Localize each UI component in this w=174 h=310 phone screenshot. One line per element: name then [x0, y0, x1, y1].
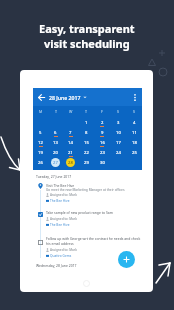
staticText: 23 [100, 150, 105, 156]
button[interactable]: 6 [51, 128, 60, 137]
staticText: The Bee Hive [50, 223, 70, 227]
staticText: 4 [133, 120, 136, 126]
staticText: W [69, 109, 73, 114]
button[interactable]: 29 [82, 158, 91, 167]
staticText: 7 [69, 130, 72, 136]
staticText: 24 [116, 150, 121, 156]
staticText: 26 [38, 160, 43, 166]
button[interactable]: 9 [98, 128, 107, 137]
button[interactable]: Take sample of new product range to Sam [46, 210, 141, 228]
staticText: 9 [101, 130, 104, 136]
button[interactable]: 11 [130, 128, 139, 137]
staticText: 30 [100, 160, 105, 166]
staticText: S [117, 109, 119, 114]
staticText: 8 [85, 130, 88, 136]
button[interactable]: Visit The Bee Hive [46, 183, 141, 204]
button[interactable]: 20 [51, 148, 60, 157]
staticText: Tuesday, 27 June 2017 [36, 174, 72, 179]
staticText: Take sample of new product range to Sam [46, 210, 113, 215]
staticText: 29 [84, 160, 89, 166]
staticText: 2 [101, 120, 104, 126]
staticText: 1 [85, 120, 88, 126]
button[interactable]: 19 [36, 148, 45, 157]
button[interactable]: Back [36, 92, 47, 103]
staticText: S [133, 109, 135, 114]
staticText: 18 [132, 140, 137, 146]
button[interactable]: 23 [98, 148, 107, 157]
staticText: F [101, 109, 103, 114]
button[interactable]: 1 [82, 118, 91, 127]
button[interactable]: Toggle item [38, 183, 43, 189]
button[interactable]: 15 [82, 138, 91, 147]
staticText: 22 [84, 150, 89, 156]
button[interactable]: More options [129, 92, 140, 103]
staticText: 16 [100, 140, 105, 146]
staticText: Quattro Gems [50, 254, 72, 258]
button[interactable]: Add event [118, 251, 135, 268]
staticText: Follow up with George wrt the contract h… [46, 236, 141, 246]
button[interactable]: 12 [36, 138, 45, 147]
button[interactable]: 14 [66, 138, 75, 147]
staticText: 14 [68, 140, 73, 146]
button[interactable]: 17 [114, 138, 123, 147]
staticText: 27 [53, 160, 58, 166]
button[interactable]: Toggle item [38, 211, 43, 217]
button[interactable]: 7 [66, 128, 75, 137]
button[interactable]: 25 [130, 148, 139, 157]
staticText: 5 [39, 130, 42, 136]
button[interactable]: 13 [51, 138, 60, 147]
button[interactable]: Toggle item [38, 239, 43, 245]
staticText: Easy, transparent [39, 21, 135, 36]
staticText: Wednesday, 28 June 2017 [36, 263, 77, 268]
button[interactable]: 22 [82, 148, 91, 157]
button[interactable]: 24 [114, 148, 123, 157]
staticText: Visit The Bee Hive [46, 183, 75, 188]
button[interactable]: 4 [130, 118, 139, 127]
button[interactable]: 3 [114, 118, 123, 127]
button[interactable]: 27 [51, 158, 60, 167]
button[interactable]: 21 [66, 148, 75, 157]
staticText: Go meet the new Marketing Manager at the… [46, 188, 125, 192]
staticText: 21 [68, 150, 73, 156]
button[interactable]: Follow up with George wrt the contract h… [46, 236, 141, 259]
button[interactable]: 8 [82, 128, 91, 137]
button[interactable]: 28 [66, 158, 75, 167]
staticText: Assigned to: Mark [50, 217, 77, 221]
staticText: 3 [117, 120, 120, 126]
staticText: 17 [116, 140, 121, 146]
staticText: 25 [132, 150, 137, 156]
button[interactable]: 26 [36, 158, 45, 167]
staticText: 6 [54, 130, 57, 136]
staticText: Assigned to: Mark [50, 248, 77, 252]
staticText: M [39, 109, 43, 114]
button[interactable]: 5 [36, 128, 45, 137]
staticText: T [55, 109, 57, 114]
button[interactable]: 16 [98, 138, 107, 147]
button[interactable]: 30 [98, 158, 107, 167]
staticText: T [85, 109, 87, 114]
staticText: The Bee Hive [50, 199, 70, 203]
staticText: 15 [84, 140, 89, 146]
staticText: 19 [38, 150, 43, 156]
button[interactable]: 2 [98, 118, 107, 127]
button[interactable]: 10 [114, 128, 123, 137]
button[interactable]: 18 [130, 138, 139, 147]
staticText: visit scheduling [44, 36, 130, 51]
staticText: 12 [38, 140, 43, 146]
staticText: Assigned to: Mark [50, 193, 77, 197]
staticText: 28 [68, 160, 73, 166]
staticText: 20 [53, 150, 58, 156]
staticText: 11 [132, 130, 137, 136]
staticText: 28 June 2017 [49, 94, 81, 101]
staticText: 13 [53, 140, 58, 146]
staticText: 10 [116, 130, 121, 136]
